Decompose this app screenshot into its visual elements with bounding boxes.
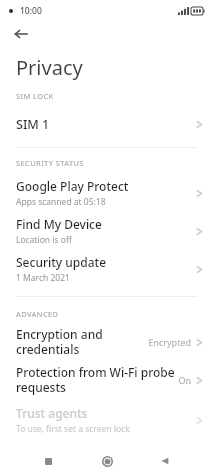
- staticText: To use, first set a screen lock: [16, 423, 130, 435]
- button[interactable]: Home: [96, 450, 118, 472]
- staticText: 1 March 2021: [16, 272, 70, 284]
- button[interactable]: Back: [154, 450, 176, 472]
- staticText: Protection from Wi-Fi probe requests: [16, 364, 178, 396]
- button[interactable]: Security update: [0, 250, 213, 288]
- staticText: SECURITY STATUS: [16, 158, 84, 168]
- staticText: Find My Device: [16, 216, 102, 232]
- staticText: Encryption and credentials: [16, 326, 148, 358]
- staticText: Apps scanned at 05:18: [16, 196, 106, 208]
- button[interactable]: Encryption and credentials: [0, 325, 213, 359]
- staticText: On: [178, 374, 191, 386]
- staticText: Security update: [16, 254, 107, 270]
- button[interactable]: Trust agents: [0, 401, 213, 439]
- button[interactable]: Back: [10, 23, 32, 45]
- staticText: Google Play Protect: [16, 178, 129, 194]
- button[interactable]: Find My Device: [0, 212, 213, 250]
- staticText: Location is off: [16, 234, 72, 246]
- button[interactable]: SIM 1: [0, 107, 213, 141]
- staticText: SIM 1: [16, 116, 50, 133]
- staticText: SIM LOCK: [16, 91, 54, 101]
- button[interactable]: Protection from Wi-Fi probe requests: [0, 359, 213, 401]
- staticText: Privacy: [16, 54, 83, 81]
- button[interactable]: Google Play Protect: [0, 174, 213, 212]
- staticText: ADVANCED: [16, 309, 59, 319]
- staticText: 10:00: [20, 5, 42, 17]
- staticText: Trust agents: [16, 405, 88, 421]
- staticText: Encrypted: [148, 336, 191, 348]
- button[interactable]: Recents: [37, 450, 59, 472]
